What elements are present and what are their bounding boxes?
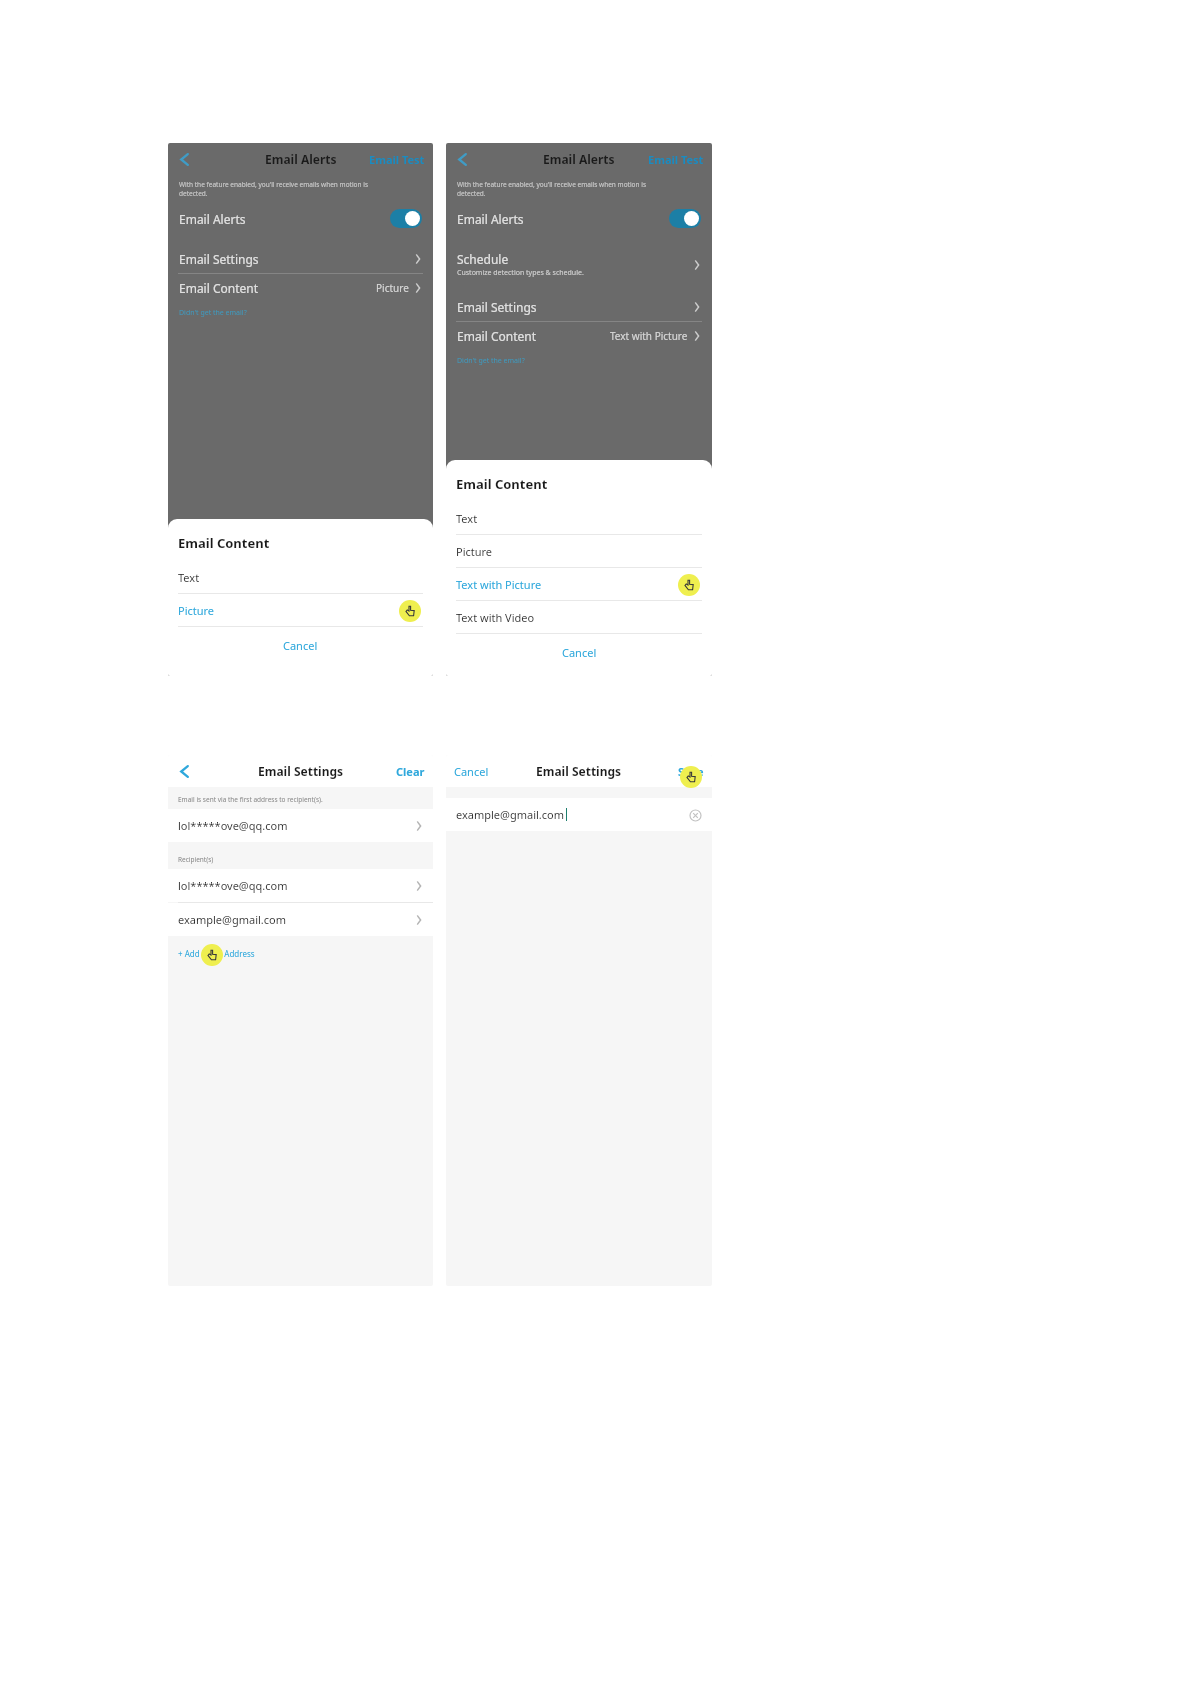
- staticText: Email Test: [369, 152, 425, 167]
- button[interactable]: Cancel: [168, 627, 433, 664]
- staticText: Picture: [178, 603, 215, 618]
- staticText: With the feature enabled, you'll receive…: [179, 180, 369, 198]
- staticText: Cancel: [454, 764, 489, 779]
- button[interactable]: example@gmail.com: [446, 798, 712, 831]
- button[interactable]: Picture: [168, 594, 433, 627]
- staticText: Email Settings: [258, 763, 344, 779]
- staticText: Text with Picture: [456, 577, 542, 592]
- button[interactable]: Cancel: [446, 758, 497, 785]
- button[interactable]: Text with Picture: [446, 568, 712, 601]
- staticText: Email Alerts: [457, 211, 524, 227]
- button[interactable]: Schedule: [446, 245, 712, 284]
- staticText: Picture: [376, 281, 409, 295]
- staticText: Picture: [456, 544, 493, 559]
- button[interactable]: Email Content: [168, 274, 433, 302]
- staticText: Cancel: [283, 638, 318, 653]
- button[interactable]: Text: [446, 502, 712, 535]
- button[interactable]: Text with Video: [446, 601, 712, 634]
- staticText: Email Settings: [457, 299, 537, 315]
- button[interactable]: Back: [171, 146, 197, 172]
- staticText: Text with Video: [456, 610, 535, 625]
- button[interactable]: + Add Email Address: [168, 936, 255, 959]
- button[interactable]: Didn't get the email?: [457, 356, 525, 366]
- staticText: Email Content: [179, 280, 259, 296]
- button[interactable]: Picture: [446, 535, 712, 568]
- staticText: example@gmail.com: [178, 912, 415, 927]
- button[interactable]: Clear: [388, 758, 433, 785]
- button[interactable]: Email Settings: [168, 245, 433, 273]
- staticText: Email Alerts: [265, 151, 337, 167]
- staticText: Text with Picture: [610, 329, 688, 343]
- staticText: Text: [456, 511, 478, 526]
- staticText: With the feature enabled, you'll receive…: [457, 180, 647, 198]
- button[interactable]: Email Test: [640, 146, 712, 173]
- staticText: Cancel: [562, 645, 597, 660]
- staticText: Email Settings: [179, 251, 259, 267]
- staticText: Text: [178, 570, 200, 585]
- button[interactable]: Cancel: [446, 634, 712, 671]
- button[interactable]: Clear text: [688, 808, 702, 822]
- staticText: Recipient(s): [178, 855, 214, 864]
- staticText: Email is sent via the first address to r…: [178, 795, 323, 804]
- staticText: Email Test: [648, 152, 704, 167]
- staticText: lol*****ove@qq.com: [178, 878, 415, 893]
- button[interactable]: Email Alerts: [446, 203, 712, 234]
- staticText: Clear: [396, 764, 425, 779]
- button[interactable]: Save: [670, 758, 712, 785]
- button[interactable]: Back: [449, 146, 475, 172]
- button[interactable]: example@gmail.com: [168, 903, 433, 936]
- staticText: Email Alerts: [179, 211, 246, 227]
- staticText: Schedule: [457, 251, 509, 267]
- staticText: Email Settings: [536, 763, 622, 779]
- staticText: Customize detection types & schedule.: [457, 268, 584, 278]
- staticText: Email Content: [456, 475, 548, 493]
- button[interactable]: Didn't get the email?: [179, 308, 247, 318]
- staticText: Save: [678, 764, 704, 779]
- button[interactable]: Email Settings: [446, 293, 712, 321]
- button[interactable]: Email Test: [361, 146, 433, 173]
- button[interactable]: Back: [171, 758, 197, 784]
- staticText: Email Content: [457, 328, 537, 344]
- button[interactable]: lol*****ove@qq.com: [168, 809, 433, 842]
- staticText: Email Content: [178, 534, 270, 552]
- button[interactable]: Email Content: [446, 322, 712, 350]
- staticText: lol*****ove@qq.com: [178, 818, 415, 833]
- button[interactable]: [669, 209, 701, 228]
- button[interactable]: Text: [168, 561, 433, 594]
- button[interactable]: [390, 209, 422, 228]
- staticText: Email Alerts: [543, 151, 615, 167]
- button[interactable]: lol*****ove@qq.com: [168, 869, 433, 902]
- staticText: example@gmail.com: [456, 807, 565, 822]
- button[interactable]: Email Alerts: [168, 203, 433, 234]
